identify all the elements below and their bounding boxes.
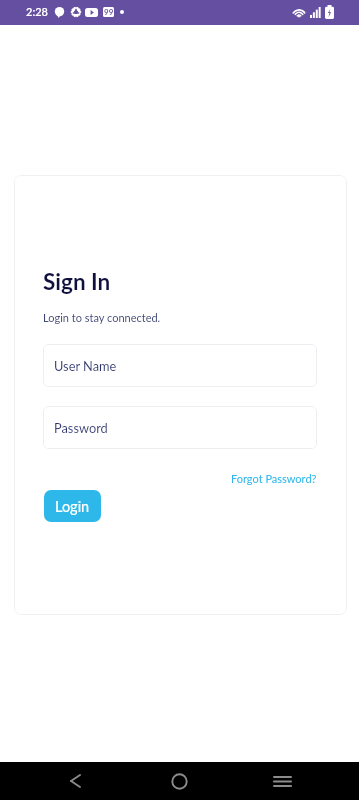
staticText: Login to stay connected.: [43, 311, 161, 324]
button[interactable]: Home: [157, 762, 202, 800]
button[interactable]: User Name: [43, 344, 317, 387]
staticText: 2:28: [26, 5, 48, 18]
staticText: Sign In: [43, 268, 111, 295]
button[interactable]: Back: [53, 762, 98, 800]
staticText: Login: [55, 498, 90, 515]
button[interactable]: Forgot Password?: [231, 472, 317, 485]
staticText: Password: [54, 420, 108, 435]
button[interactable]: Recent apps: [260, 762, 305, 800]
staticText: 99: [104, 7, 114, 17]
button[interactable]: Password: [43, 406, 317, 449]
button[interactable]: Login: [44, 490, 101, 522]
staticText: User Name: [54, 358, 117, 373]
